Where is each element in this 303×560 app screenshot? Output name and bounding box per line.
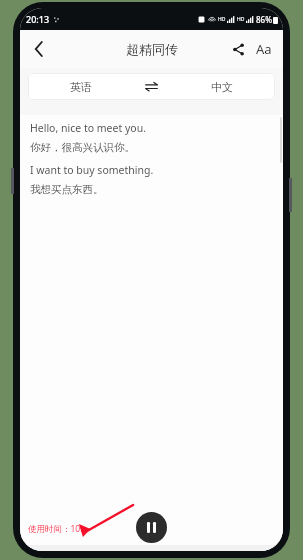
staticText: HD xyxy=(218,16,226,23)
button[interactable]: Pause xyxy=(136,512,167,543)
button[interactable]: Swap languages xyxy=(134,73,168,100)
staticText: 你好，很高兴认识你。 xyxy=(30,141,135,154)
staticText: HD xyxy=(237,16,245,23)
staticText: 我想买点东西。 xyxy=(30,183,104,196)
staticText: Aa xyxy=(256,40,272,58)
staticText: 中文 xyxy=(211,80,233,94)
staticText: Hello, nice to meet you. xyxy=(30,121,146,135)
button[interactable]: Text size xyxy=(251,36,277,62)
staticText: I want to buy something. xyxy=(30,163,154,177)
staticText: 使用时间：10s xyxy=(28,523,85,535)
button[interactable]: 英语 xyxy=(28,73,134,100)
button[interactable]: Share xyxy=(225,36,251,62)
button[interactable]: 中文 xyxy=(168,73,275,100)
staticText: 英语 xyxy=(70,80,92,94)
staticText: 超精同传 xyxy=(126,41,178,57)
button[interactable]: Back xyxy=(26,36,52,62)
staticText: 86% xyxy=(256,14,272,25)
staticText: 20:13 xyxy=(26,13,50,25)
